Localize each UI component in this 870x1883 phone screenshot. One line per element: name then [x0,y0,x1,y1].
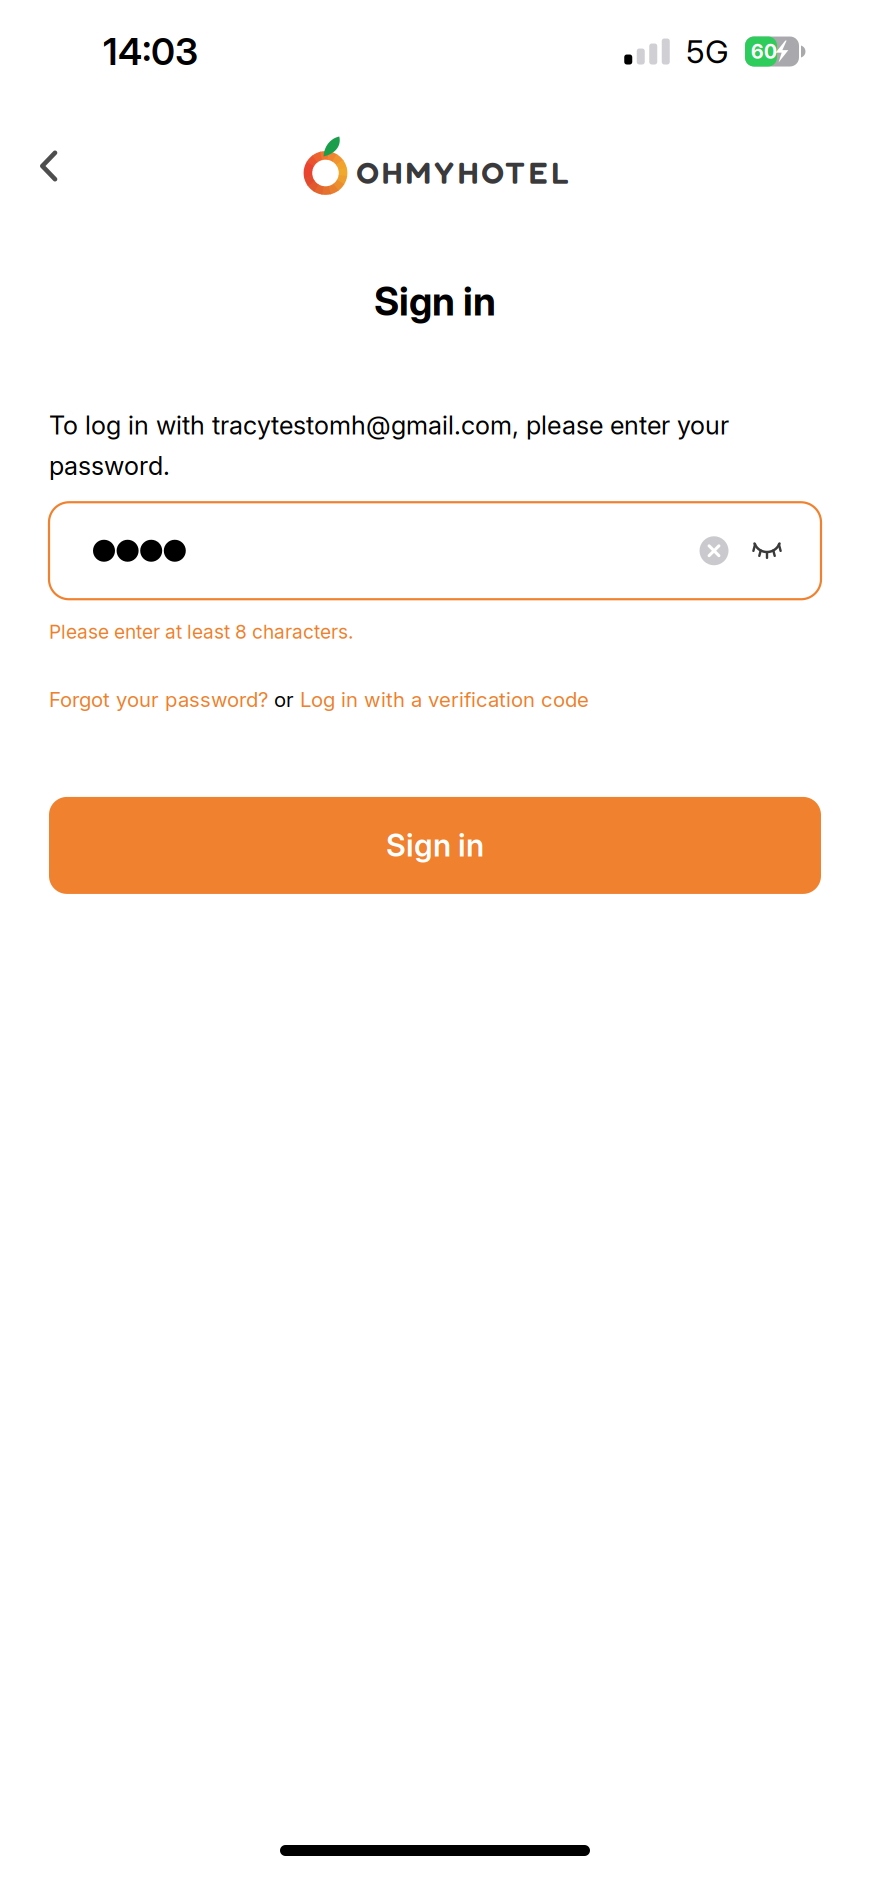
staticText: Sign in [374,278,496,325]
button[interactable]: Back [0,110,85,198]
staticText: Forgot your password? [49,687,268,712]
staticText: 14:03 [103,29,198,74]
button[interactable]: Clear password [687,524,741,578]
button[interactable]: Log in with a verification code [300,687,589,712]
staticText: 60 [751,39,777,64]
staticText: Please enter at least 8 characters. [49,620,353,643]
staticText: Sign in [386,827,484,864]
staticText: or [268,687,300,712]
staticText: 5G [686,32,729,71]
button[interactable]: Forgot your password? [49,687,268,712]
button[interactable]: Show password [741,524,793,578]
staticText: OHMYHOTEL [356,154,568,191]
staticText: To log in with tracytestomh@gmail.com, p… [49,410,729,481]
button[interactable]: Sign in [49,797,821,894]
staticText: Log in with a verification code [300,687,589,712]
